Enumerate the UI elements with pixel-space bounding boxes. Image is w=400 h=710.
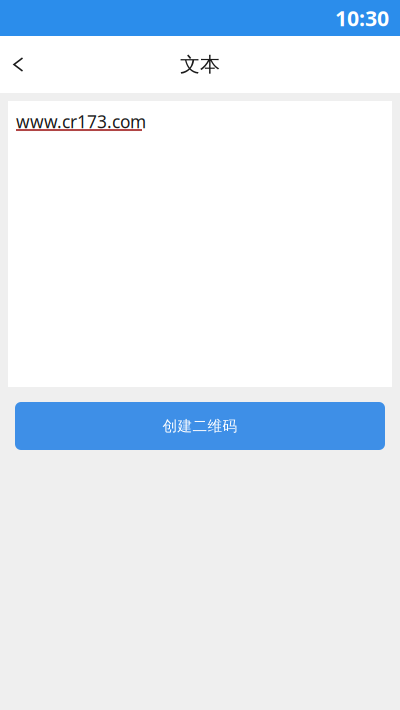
staticText: 创建二维码 — [162, 417, 237, 435]
button[interactable]: 创建二维码 — [15, 402, 385, 450]
button[interactable]: www.cr173.com — [8, 101, 392, 387]
staticText: 10:30 — [335, 4, 389, 32]
staticText: www.cr173.com — [16, 110, 146, 133]
staticText: 文本 — [180, 52, 220, 77]
button[interactable]: Back — [0, 36, 46, 93]
